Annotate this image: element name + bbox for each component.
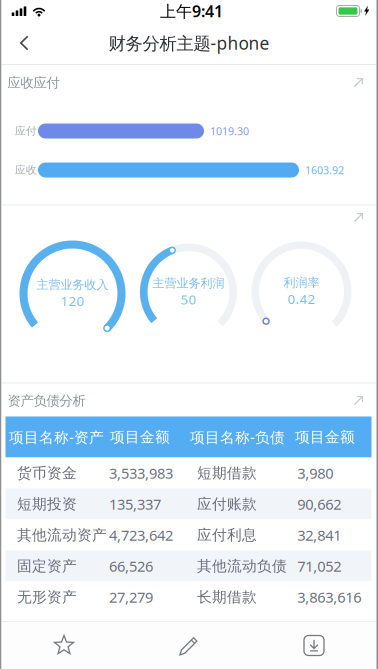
staticText: 90,662 — [297, 494, 341, 514]
staticText: 应收应付 — [7, 75, 59, 91]
staticText: 财务分析主题-phone — [108, 31, 269, 54]
staticText: 1019.30 — [210, 124, 249, 138]
button[interactable]: 编辑 — [126, 622, 251, 669]
button[interactable]: 返回 — [1, 23, 45, 63]
staticText: 短期投资 — [17, 495, 77, 513]
staticText: 应付利息 — [197, 526, 257, 544]
staticText: 固定资产 — [17, 557, 77, 575]
staticText: 上午9:41 — [160, 0, 223, 22]
staticText: 项目名称-负债 — [190, 427, 285, 447]
staticText: 135,337 — [109, 494, 161, 514]
button[interactable]: 展开资产负债分析 — [349, 391, 368, 410]
staticText: 1603.92 — [305, 163, 344, 177]
staticText: 其他流动资产 — [17, 526, 107, 544]
staticText: 27,279 — [109, 587, 153, 607]
staticText: 无形资产 — [17, 588, 77, 606]
staticText: 应付账款 — [197, 495, 257, 513]
staticText: 其他流动负债 — [197, 557, 287, 575]
button[interactable]: 收藏 — [1, 622, 126, 669]
staticText: 货币资金 — [17, 464, 77, 482]
staticText: 应收 — [15, 163, 37, 176]
staticText: 71,052 — [297, 556, 341, 576]
staticText: 利润率 — [283, 275, 319, 290]
staticText: 32,841 — [297, 525, 341, 545]
staticText: 短期借款 — [197, 464, 257, 482]
staticText: 0.42 — [287, 290, 315, 308]
button[interactable]: 展开经营指标 — [349, 208, 368, 227]
staticText: 66,526 — [109, 556, 153, 576]
staticText: 应付 — [15, 124, 37, 137]
staticText: 资产负债分析 — [7, 393, 85, 409]
staticText: 120 — [60, 292, 84, 310]
button[interactable]: 展开应收应付 — [349, 73, 368, 92]
staticText: 项目名称-资产 — [9, 427, 104, 447]
staticText: 主营业务收入 — [36, 277, 108, 292]
staticText: 3,533,983 — [109, 463, 173, 483]
staticText: 项目金额 — [110, 428, 170, 446]
staticText: 3,863,616 — [297, 587, 361, 607]
staticText: 3,980 — [297, 463, 333, 483]
staticText: 长期借款 — [197, 588, 257, 606]
staticText: 50 — [180, 290, 196, 308]
staticText: 主营业务利润 — [152, 276, 224, 290]
button[interactable]: 下载 — [251, 622, 376, 669]
staticText: 项目金额 — [295, 428, 355, 446]
staticText: 4,723,642 — [109, 525, 173, 545]
